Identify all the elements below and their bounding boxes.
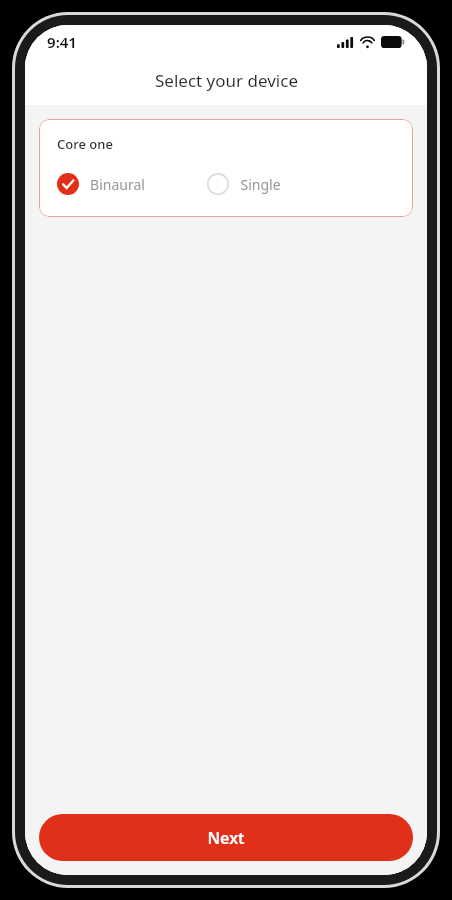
staticText: Core one [57, 135, 113, 153]
staticText: Select your device [155, 69, 298, 92]
button[interactable]: Next [39, 814, 413, 861]
button[interactable]: Single [207, 173, 281, 195]
button[interactable]: Binaural [57, 173, 207, 195]
staticText: Next [207, 827, 245, 849]
staticText: Single [240, 175, 281, 194]
staticText: 9:41 [47, 32, 77, 52]
staticText: Binaural [90, 175, 145, 194]
